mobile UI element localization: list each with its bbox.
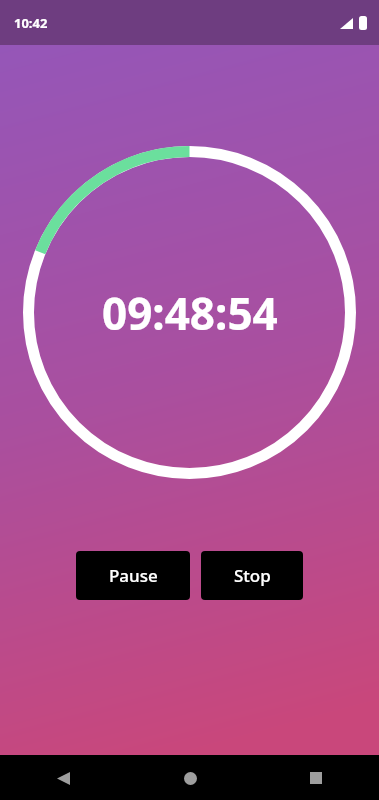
staticText: 09:48:54 — [102, 283, 278, 343]
staticText: 10:42 — [14, 14, 48, 32]
other: Timer progress 09 hours 48 minutes 54 se… — [23, 146, 356, 479]
staticText: Pause — [109, 564, 158, 587]
button[interactable]: Home — [170, 758, 210, 798]
button[interactable]: Recent apps — [296, 758, 336, 798]
button[interactable]: Pause — [76, 551, 190, 600]
button[interactable]: Stop — [201, 551, 303, 600]
staticText: Stop — [234, 564, 271, 587]
button[interactable]: Back — [43, 758, 83, 798]
